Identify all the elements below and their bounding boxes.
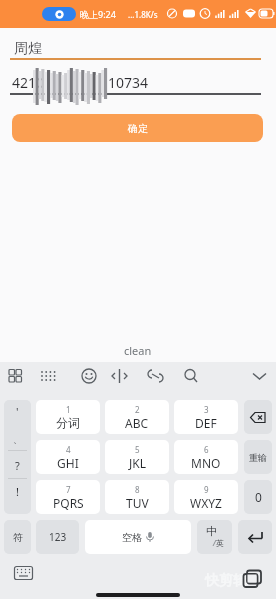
- staticText: 分词: [56, 415, 80, 430]
- staticText: 9: [204, 484, 209, 495]
- staticText: 2: [135, 404, 140, 415]
- staticText: GHI: [57, 455, 79, 471]
- staticText: 周煌: [14, 40, 42, 58]
- staticText: !: [16, 484, 19, 499]
- button[interactable]: clean: [0, 340, 276, 360]
- staticText: 123: [49, 530, 67, 544]
- button[interactable]: 3: [174, 400, 238, 434]
- button[interactable]: 空格: [85, 520, 191, 554]
- button[interactable]: 中: [197, 520, 232, 554]
- staticText: DEF: [195, 415, 217, 431]
- staticText: 7: [66, 484, 71, 495]
- button[interactable]: [244, 400, 272, 434]
- button[interactable]: [177, 363, 203, 393]
- button[interactable]: 0: [244, 480, 272, 514]
- button[interactable]: [106, 363, 132, 393]
- button[interactable]: 9: [174, 480, 238, 514]
- staticText: 符: [13, 531, 23, 544]
- staticText: ...1.8K/s: [128, 9, 158, 20]
- button[interactable]: [35, 363, 61, 393]
- button[interactable]: 1: [36, 400, 100, 434]
- staticText: clean: [124, 343, 152, 358]
- staticText: 6: [204, 444, 209, 455]
- button[interactable]: 5: [105, 440, 169, 474]
- staticText: PQRS: [53, 495, 84, 511]
- button[interactable]: [238, 520, 272, 554]
- button[interactable]: [76, 363, 102, 393]
- button[interactable]: 重输: [244, 440, 272, 474]
- staticText: 0: [255, 489, 262, 505]
- button[interactable]: 7: [36, 480, 100, 514]
- button[interactable]: 符: [4, 520, 31, 554]
- staticText: WXYZ: [190, 495, 222, 511]
- button[interactable]: ': [4, 400, 31, 514]
- staticText: JKL: [129, 455, 146, 471]
- staticText: 4210: [12, 73, 45, 92]
- staticText: 晚上9:24: [80, 8, 116, 20]
- staticText: 、: [13, 434, 22, 445]
- button[interactable]: [142, 363, 168, 393]
- staticText: 中: [206, 524, 217, 538]
- button[interactable]: 4: [36, 440, 100, 474]
- staticText: 10734: [108, 73, 149, 92]
- staticText: 4: [66, 444, 71, 455]
- button[interactable]: [8, 560, 38, 586]
- staticText: 快剪辑: [205, 572, 247, 590]
- staticText: 空格: [122, 531, 142, 544]
- staticText: ': [16, 404, 19, 419]
- staticText: 1: [66, 404, 71, 415]
- button[interactable]: 8: [105, 480, 169, 514]
- staticText: 5: [135, 444, 140, 455]
- staticText: 英: [216, 538, 224, 548]
- button[interactable]: 确定: [12, 114, 263, 142]
- button[interactable]: 123: [36, 520, 79, 554]
- staticText: 重输: [249, 452, 267, 463]
- staticText: TUV: [126, 495, 149, 511]
- staticText: 确定: [128, 122, 148, 135]
- staticText: MNO: [191, 455, 221, 471]
- button[interactable]: [246, 363, 272, 393]
- staticText: 3: [204, 404, 209, 415]
- staticText: ?: [15, 458, 20, 473]
- staticText: 8: [135, 484, 140, 495]
- button[interactable]: 6: [174, 440, 238, 474]
- button[interactable]: 2: [105, 400, 169, 434]
- staticText: ABC: [125, 415, 149, 431]
- button[interactable]: [2, 363, 28, 393]
